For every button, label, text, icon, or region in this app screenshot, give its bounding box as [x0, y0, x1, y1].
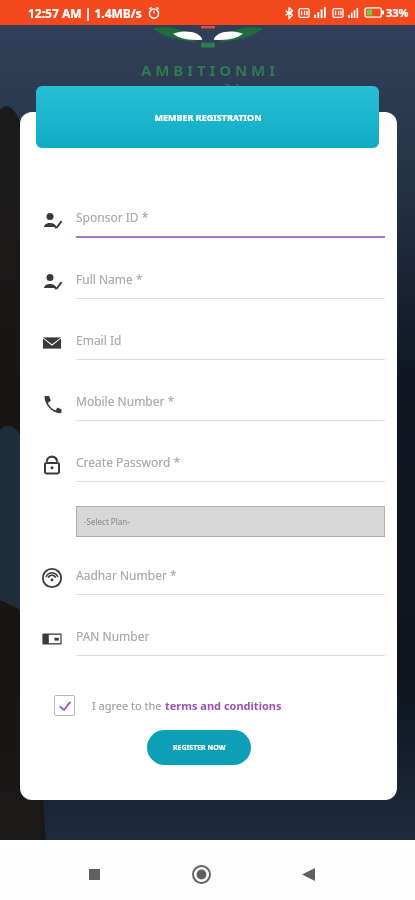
staticText: REGISTER NOW: [173, 743, 226, 753]
button[interactable]: Full Name *: [20, 251, 397, 312]
button[interactable]: Aadhar Number *: [20, 547, 397, 608]
staticText: I agree to the: [92, 698, 165, 713]
button[interactable]: I agree to the: [20, 695, 397, 716]
staticText: Sponsor ID *: [76, 209, 149, 225]
staticText: 12:57 AM | 1.4MB/s: [28, 5, 142, 21]
staticText: Email Id: [76, 332, 122, 348]
staticText: 33%: [386, 5, 409, 20]
button[interactable]: Mobile Number *: [20, 373, 397, 434]
button[interactable]: REGISTER NOW: [147, 730, 251, 765]
button[interactable]: -Select Plan-: [76, 506, 385, 537]
staticText: Full Name *: [76, 271, 143, 287]
button[interactable]: Home: [181, 854, 221, 894]
button[interactable]: Email Id: [20, 312, 397, 373]
staticText: A M B I T I O N M I: [141, 60, 275, 80]
button[interactable]: MEMBER REGISTRATION: [36, 86, 379, 148]
button[interactable]: Sponsor ID *: [20, 190, 397, 251]
button[interactable]: Create Password *: [20, 434, 397, 495]
staticText: Create Password *: [76, 454, 181, 470]
staticText: Mobile Number *: [76, 393, 175, 409]
staticText: एक कदम सफलता की ओर: [174, 83, 242, 93]
staticText: MEMBER REGISTRATION: [154, 111, 262, 123]
staticText: -Select Plan-: [84, 516, 130, 527]
staticText: PAN Number: [76, 628, 150, 644]
staticText: terms and conditions: [165, 698, 282, 713]
staticText: Aadhar Number *: [76, 567, 177, 583]
button[interactable]: Back: [288, 854, 328, 894]
button[interactable]: PAN Number: [20, 608, 397, 669]
button[interactable]: Recent apps: [74, 854, 114, 894]
